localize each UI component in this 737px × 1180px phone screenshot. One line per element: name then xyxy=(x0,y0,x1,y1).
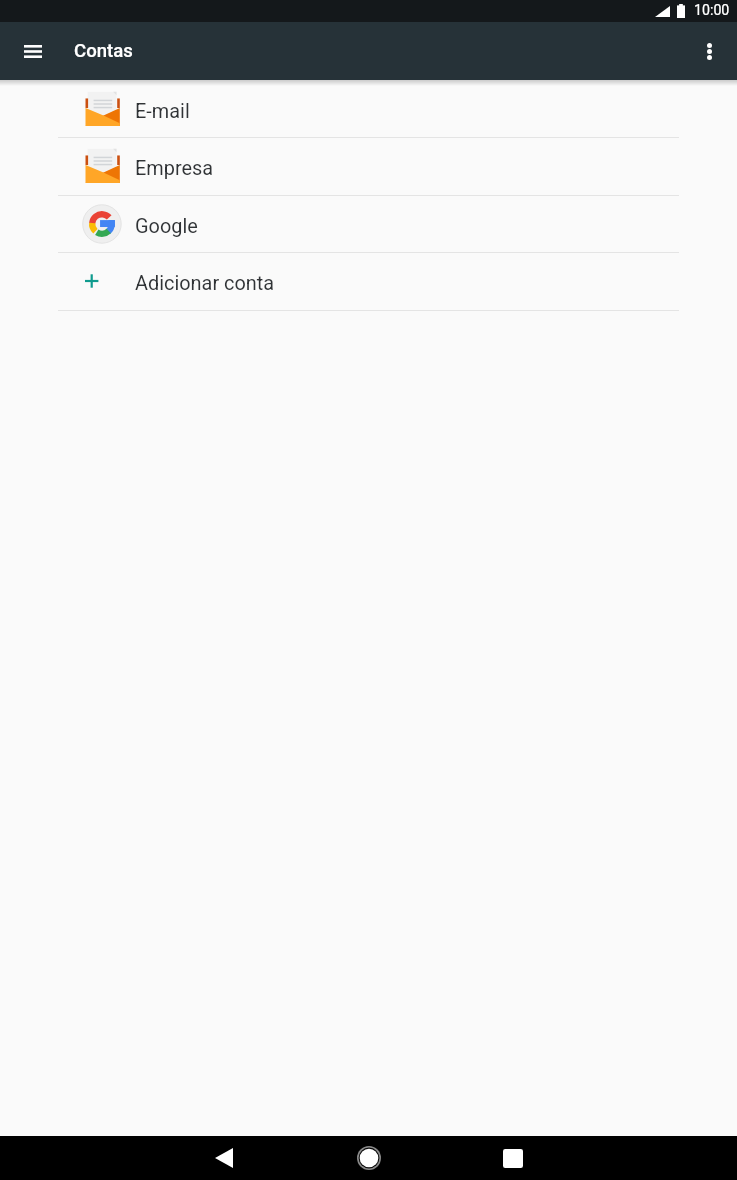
button[interactable]: Recent apps xyxy=(489,1136,537,1180)
button[interactable]: Google xyxy=(58,195,679,252)
button[interactable]: More options xyxy=(685,27,733,75)
button[interactable]: Adicionar conta xyxy=(58,252,679,309)
button[interactable]: Empresa xyxy=(58,137,679,194)
button[interactable]: Menu xyxy=(9,27,57,75)
staticText: E-mail xyxy=(135,100,190,123)
staticText: Adicionar conta xyxy=(135,272,275,295)
button[interactable]: Back xyxy=(200,1136,248,1180)
staticText: Empresa xyxy=(135,157,214,180)
button[interactable]: Home xyxy=(345,1136,393,1180)
staticText: 10:00 xyxy=(694,2,730,19)
button[interactable]: E-mail xyxy=(58,80,679,137)
staticText: Contas xyxy=(74,40,133,62)
staticText: Google xyxy=(135,215,198,238)
